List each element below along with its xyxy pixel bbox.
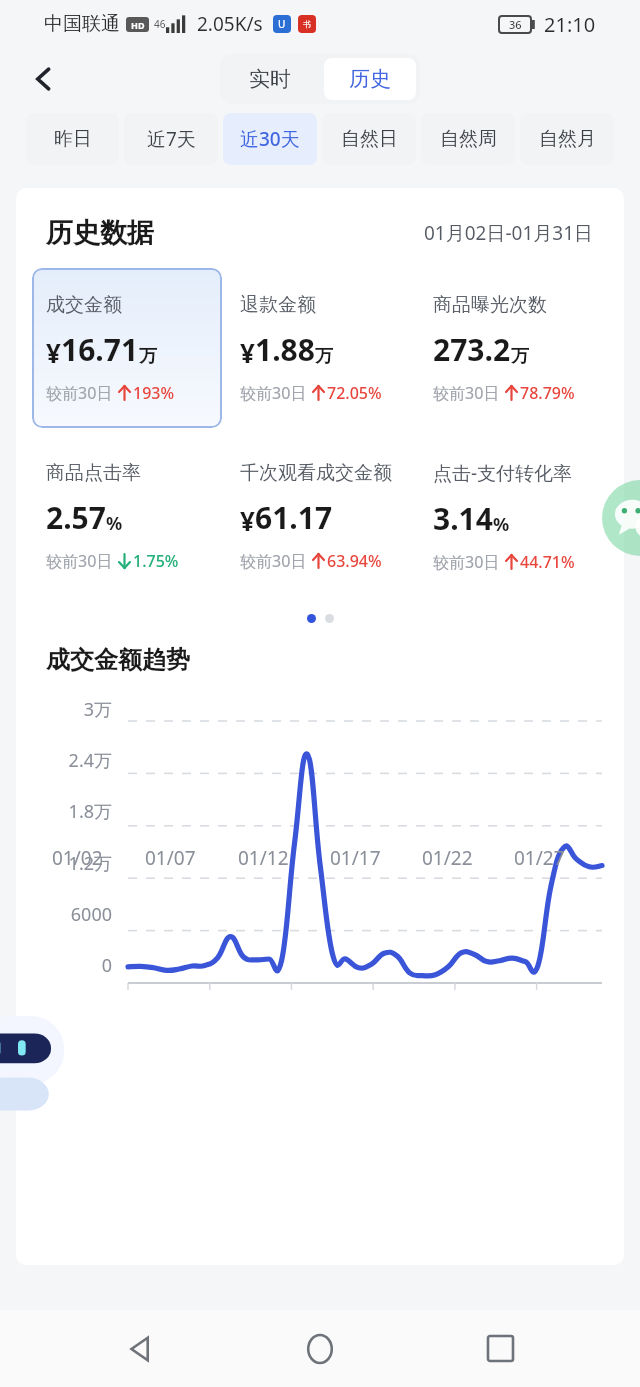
staticText: ¥ xyxy=(240,335,255,370)
staticText: 1.8万 xyxy=(16,799,112,824)
staticText: 2.05K/s xyxy=(197,11,263,37)
staticText: HD xyxy=(131,19,145,31)
button[interactable]: Share to WeChat xyxy=(602,480,640,556)
staticText: 成交金额趋势 xyxy=(46,645,190,675)
staticText: 商品曝光次数 xyxy=(433,293,547,317)
button[interactable]: Back xyxy=(102,1310,180,1387)
staticText: 01/17 xyxy=(330,845,381,871)
staticText: 较前30日 xyxy=(240,382,307,404)
button[interactable]: Recent apps xyxy=(461,1310,539,1387)
staticText: 较前30日 xyxy=(46,382,113,404)
staticText: 近30天 xyxy=(240,126,300,152)
button[interactable]: 昨日 xyxy=(26,113,119,165)
staticText: 46 xyxy=(154,17,166,31)
staticText: 万 xyxy=(511,345,529,368)
staticText: 6000 xyxy=(16,902,112,927)
button[interactable]: 退款金额 xyxy=(226,268,415,428)
button[interactable]: Back xyxy=(18,53,70,105)
button[interactable]: 商品点击率 xyxy=(32,436,222,596)
button[interactable]: 近7天 xyxy=(124,113,218,165)
staticText: 自然日 xyxy=(341,127,398,151)
staticText: 3.14 xyxy=(433,498,493,539)
staticText: 实时 xyxy=(249,66,291,92)
staticText: 72.05% xyxy=(327,382,382,404)
staticText: U xyxy=(278,17,286,31)
staticText: 01/07 xyxy=(145,845,196,871)
staticText: 昨日 xyxy=(54,127,92,151)
staticText: 2.4万 xyxy=(16,748,112,773)
staticText: 01/12 xyxy=(238,845,289,871)
staticText: 历史 xyxy=(349,66,391,92)
button[interactable]: Home xyxy=(281,1310,359,1387)
staticText: 1.75% xyxy=(133,550,179,572)
staticText: 自然月 xyxy=(539,127,596,151)
staticText: 61.17 xyxy=(255,497,333,538)
button[interactable]: 点击-支付转化率 xyxy=(419,436,608,596)
staticText: 0 xyxy=(16,953,112,978)
staticText: 2.57 xyxy=(46,497,106,538)
staticText: 193% xyxy=(133,382,175,404)
staticText: 退款金额 xyxy=(240,293,316,317)
staticText: 书 xyxy=(303,19,311,29)
staticText: ¥ xyxy=(240,503,255,538)
button[interactable]: 成交金额 xyxy=(32,268,222,428)
staticText: 近7天 xyxy=(147,126,196,152)
staticText: 1.2万 xyxy=(16,851,112,876)
staticText: 21:10 xyxy=(544,11,596,38)
staticText: 01月02日-01月31日 xyxy=(424,220,594,246)
button[interactable]: 近30天 xyxy=(223,113,317,165)
staticText: 历史数据 xyxy=(46,216,154,250)
staticText: 较前30日 xyxy=(46,550,113,572)
staticText: 较前30日 xyxy=(433,382,500,404)
staticText: 点击-支付转化率 xyxy=(433,460,573,486)
staticText: 01/27 xyxy=(514,845,565,871)
button[interactable]: 自然日 xyxy=(322,113,416,165)
staticText: 1.88 xyxy=(255,329,315,370)
staticText: 商品点击率 xyxy=(46,461,141,485)
staticText: 273.2 xyxy=(433,329,511,370)
button[interactable]: 历史 xyxy=(324,58,416,100)
button[interactable]: Assistant xyxy=(0,1005,84,1115)
staticText: 中国联通 xyxy=(44,12,120,36)
staticText: 01/22 xyxy=(422,845,473,871)
staticText: 78.79% xyxy=(520,382,575,404)
staticText: 36 xyxy=(509,17,522,32)
staticText: 3万 xyxy=(16,697,112,722)
staticText: 44.71% xyxy=(520,551,575,573)
button[interactable]: 自然月 xyxy=(520,113,614,165)
staticText: 较前30日 xyxy=(240,550,307,572)
staticText: % xyxy=(493,512,510,537)
staticText: 01/02 xyxy=(52,845,103,871)
button[interactable]: 商品曝光次数 xyxy=(419,268,608,428)
staticText: 16.71 xyxy=(61,329,139,370)
staticText: 较前30日 xyxy=(433,551,500,573)
staticText: 千次观看成交金额 xyxy=(240,461,392,485)
staticText: % xyxy=(106,511,123,536)
staticText: 自然周 xyxy=(440,127,497,151)
staticText: 63.94% xyxy=(327,550,382,572)
staticText: 万 xyxy=(315,345,333,368)
staticText: 万 xyxy=(139,345,157,368)
staticText: ¥ xyxy=(46,335,61,370)
button[interactable]: 实时 xyxy=(224,58,316,100)
button[interactable]: 千次观看成交金额 xyxy=(226,436,415,596)
button[interactable]: 自然周 xyxy=(421,113,515,165)
staticText: 成交金额 xyxy=(46,293,122,317)
